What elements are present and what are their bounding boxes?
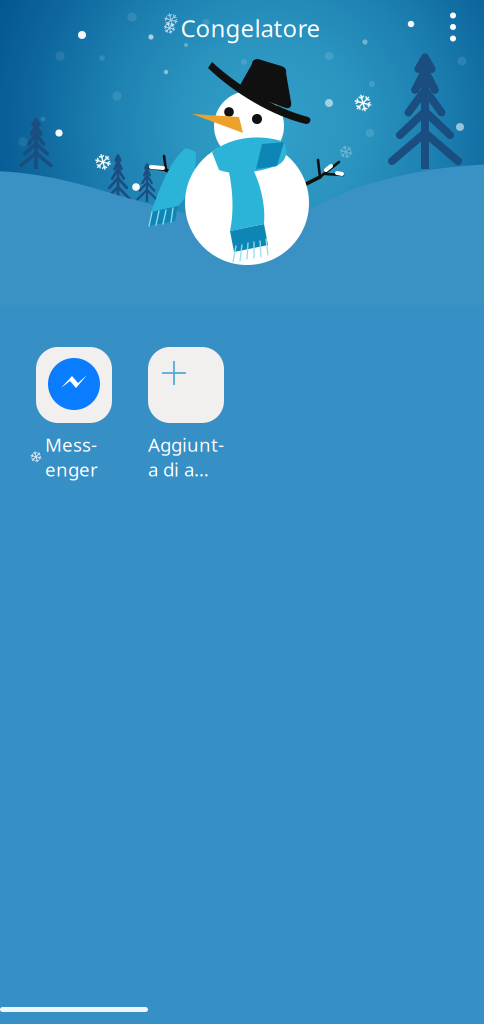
staticText: Congelatore [180, 12, 320, 44]
staticText: Messenger [45, 432, 98, 482]
staticText: Aggiunta di a… [148, 432, 224, 482]
button[interactable]: Messenger [36, 347, 112, 457]
button[interactable]: Aggiunta di a… [148, 347, 224, 457]
button[interactable]: More options [431, 5, 475, 49]
